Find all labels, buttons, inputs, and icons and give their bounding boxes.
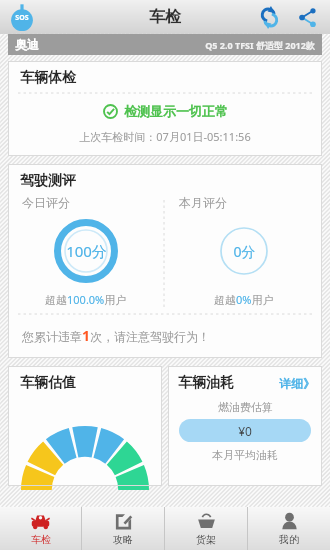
button[interactable]: 货架	[165, 507, 247, 550]
staticText: 今日评分	[22, 195, 70, 210]
button[interactable]: Refresh	[254, 2, 284, 32]
staticText: 车检	[149, 7, 181, 27]
staticText: 上次车检时间：07月01日-05:11:56	[79, 129, 251, 144]
staticText: 我的	[279, 533, 299, 546]
staticText: 检测显示一切正常	[124, 103, 228, 119]
staticText: 奥迪	[15, 37, 39, 52]
staticText: Q5 2.0 TFSI 舒适型 2012款	[205, 39, 315, 51]
staticText: ¥0	[238, 423, 252, 439]
button[interactable]: 奥迪	[8, 34, 322, 55]
staticText: 车辆油耗	[178, 374, 234, 392]
staticText: 100分	[66, 241, 107, 261]
button[interactable]: Share	[292, 2, 322, 32]
button[interactable]: 车辆估值	[8, 366, 162, 486]
button[interactable]: 驾驶测评	[8, 164, 322, 358]
staticText: 本月平均油耗	[212, 448, 278, 462]
button[interactable]: 我的	[248, 507, 330, 550]
button[interactable]: SOS emergency	[6, 1, 38, 33]
button[interactable]: 详细》	[279, 376, 315, 391]
staticText: 货架	[196, 533, 216, 546]
button[interactable]: 车检	[0, 507, 81, 550]
button[interactable]: 攻略	[82, 507, 164, 550]
staticText: 本月评分	[179, 195, 227, 210]
staticText: 攻略	[113, 533, 133, 546]
staticText: 超越0%用户	[214, 292, 274, 307]
staticText: 驾驶测评	[20, 172, 76, 190]
staticText: 燃油费估算	[218, 400, 273, 414]
staticText: SOS	[15, 13, 29, 23]
button[interactable]: 车辆油耗	[168, 366, 322, 486]
staticText: 车辆估值	[20, 374, 76, 392]
staticText: 您累计违章1次，请注意驾驶行为！	[22, 326, 211, 345]
staticText: 0分	[233, 242, 256, 261]
staticText: 车辆体检	[20, 69, 76, 87]
staticText: 详细》	[279, 376, 315, 391]
button[interactable]: 车辆体检	[8, 61, 322, 156]
staticText: 超越100.0%用户	[45, 292, 127, 307]
staticText: 车检	[31, 533, 51, 546]
